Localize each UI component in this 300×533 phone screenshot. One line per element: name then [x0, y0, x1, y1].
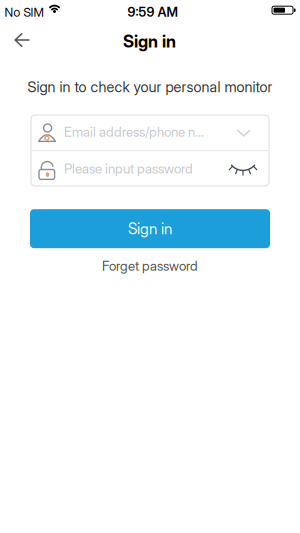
staticText: No SIM	[4, 5, 43, 20]
staticText: Sign in	[123, 31, 176, 52]
button[interactable]: Sign in	[30, 209, 270, 248]
staticText: 9:59 AM	[127, 4, 177, 20]
button[interactable]	[9, 27, 45, 53]
button[interactable]: Email address/phone n...	[31, 115, 268, 150]
button[interactable]: Please input password	[31, 151, 268, 186]
staticText: Sign in	[128, 219, 172, 238]
staticText: Forget password	[102, 258, 198, 274]
staticText: Please input password	[64, 161, 193, 177]
button[interactable]: Forget password	[102, 258, 198, 274]
staticText: Sign in to check your personal monitor	[27, 78, 272, 96]
staticText: Email address/phone n...	[64, 124, 204, 140]
